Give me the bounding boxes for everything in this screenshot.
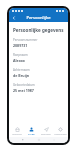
- button[interactable]: Berichten: [39, 126, 53, 137]
- button[interactable]: Terug: [10, 14, 18, 22]
- staticText: Persoonlijke informatie: [18, 15, 59, 21]
- staticText: Persoonsnummer: [13, 38, 38, 42]
- staticText: Berichten: [41, 133, 51, 136]
- button[interactable]: Overzicht: [10, 126, 24, 137]
- staticText: 25 mei 1987: [13, 88, 34, 93]
- button[interactable]: Profiel: [24, 126, 38, 137]
- staticText: Instellingen: [54, 133, 67, 136]
- staticText: Profiel: [28, 133, 35, 136]
- staticText: Overzicht: [12, 133, 22, 136]
- staticText: 2089731: [13, 43, 28, 48]
- staticText: Alexxx: [13, 58, 25, 63]
- staticText: Achternaam: [13, 68, 30, 72]
- staticText: Geboortedatum: [13, 83, 35, 87]
- staticText: Roepnaam: [13, 53, 28, 57]
- staticText: de Bruijn: [13, 73, 30, 78]
- button[interactable]: Instellingen: [53, 126, 67, 137]
- staticText: Persoonlijke gegevens: [13, 27, 64, 33]
